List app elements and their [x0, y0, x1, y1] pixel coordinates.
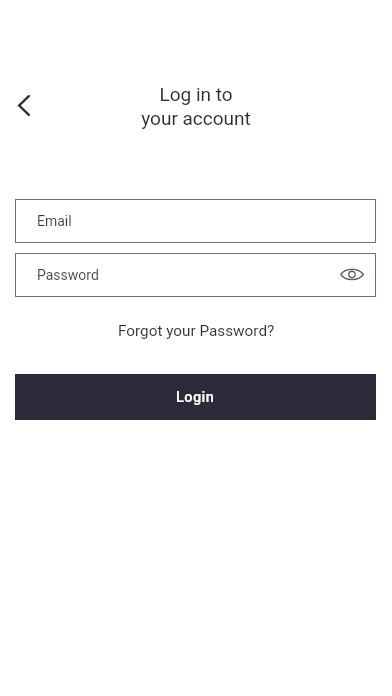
button[interactable]: Password	[15, 253, 376, 297]
button[interactable]: Back	[4, 85, 44, 125]
staticText: Login	[176, 389, 215, 406]
button[interactable]: Email	[15, 199, 376, 243]
staticText: Password	[37, 267, 99, 283]
button[interactable]: Login	[15, 374, 376, 420]
staticText: Email	[37, 213, 72, 229]
staticText: Forgot your Password?	[118, 322, 275, 340]
button[interactable]: Show password	[338, 261, 366, 289]
staticText: Log in to your account	[141, 83, 251, 130]
button[interactable]: Forgot your Password?	[110, 320, 283, 342]
